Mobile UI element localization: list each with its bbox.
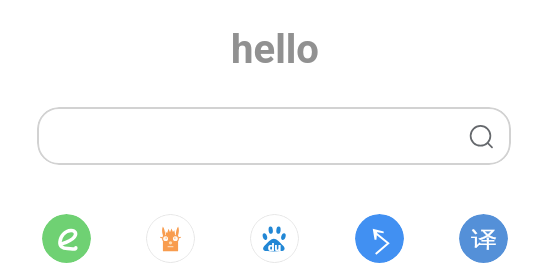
staticText: du [268, 240, 281, 253]
button[interactable]: Translate [459, 214, 508, 263]
staticText: 译 [471, 225, 497, 253]
staticText: hello [231, 26, 319, 73]
button[interactable]: Baidu [250, 214, 299, 263]
other: Search [466, 120, 498, 152]
button[interactable]: Browser [42, 214, 91, 263]
button[interactable]: Tmall [146, 214, 195, 263]
button[interactable]: Navigation [355, 214, 404, 263]
button[interactable]: Search [37, 107, 511, 165]
